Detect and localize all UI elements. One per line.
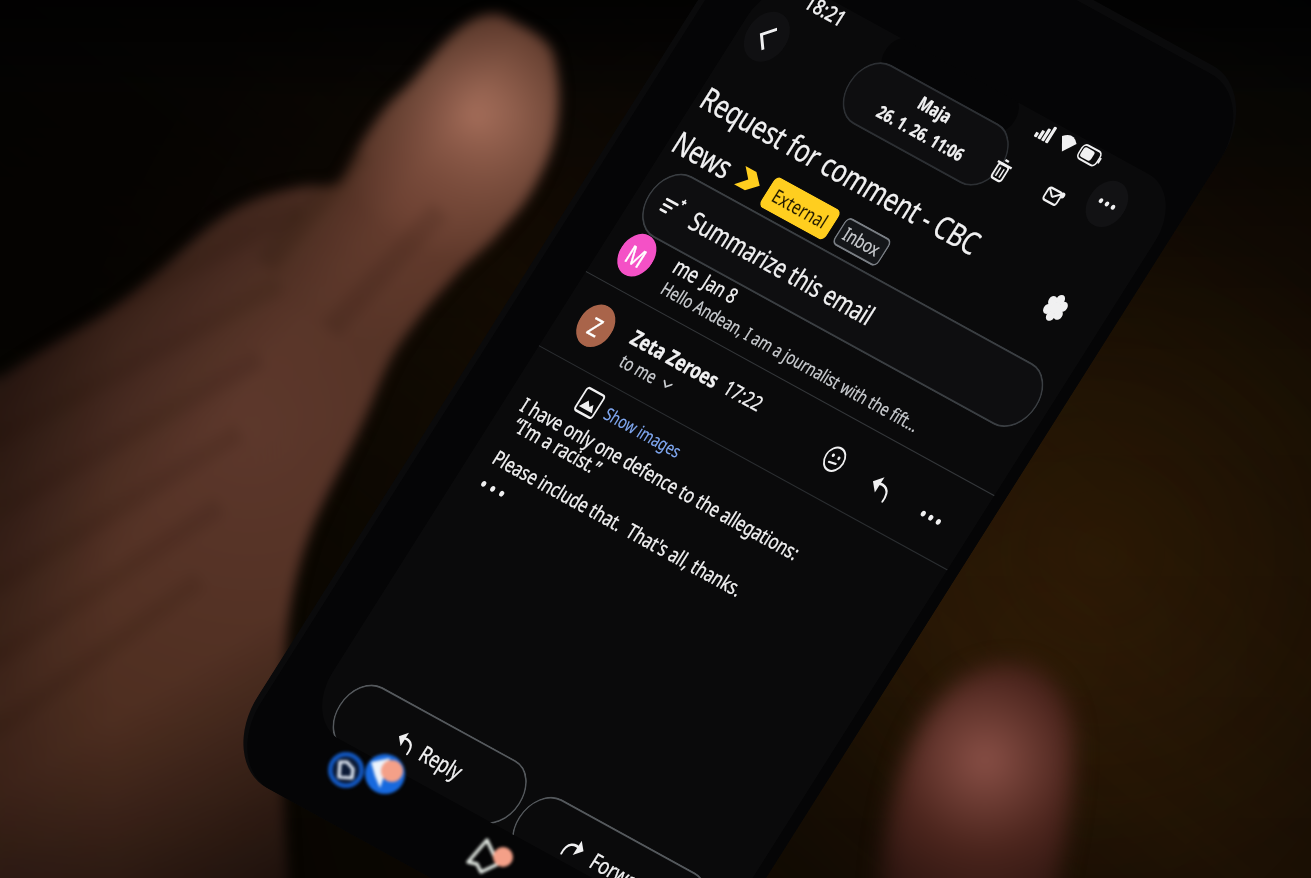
staticText: I have only one defence to the allegatio… [513,357,807,601]
button[interactable]: More options [900,486,961,549]
staticText: Maja [911,86,959,133]
button[interactable]: Reply [851,455,911,519]
staticText: Forward [583,838,662,878]
button[interactable]: Reply [319,651,543,852]
button[interactable]: Forward [506,764,722,878]
staticText: Z [579,307,612,345]
staticText: “I'm a racist.” [506,401,609,493]
staticText: me [666,247,709,292]
staticText: Zeta Zeroes [624,312,728,405]
button[interactable]: Add reaction [804,427,865,491]
button[interactable]: Inbox [829,210,895,273]
staticText: Please include that. That's all, thanks. [485,413,750,634]
button[interactable]: Back [731,0,802,74]
staticText: Hello Andean, I am a journalist with the… [655,244,927,469]
button[interactable]: External [756,167,844,249]
staticText: to me [613,344,664,394]
staticText: Summarize this email [680,180,885,356]
staticText: Request for comment - CBC [689,42,992,298]
staticText: 17:22 [716,369,771,422]
button[interactable]: More options [1074,169,1140,238]
staticText: External [765,176,835,241]
button[interactable]: Delete [969,138,1032,204]
button[interactable]: Show images [598,392,688,473]
staticText: Inbox [836,217,888,267]
staticText: 26. 1. 26. 11:06 [870,89,970,177]
staticText: M [617,234,656,277]
staticText: Jan 8 [695,264,746,314]
staticText: 18:21 [798,0,853,37]
button[interactable]: Summarize with AI [1026,277,1084,338]
staticText: Reply [412,733,472,791]
staticText: News [661,114,745,195]
button[interactable]: Summarize this email [625,115,1060,486]
button[interactable]: Notification from Maja [826,33,1025,215]
button[interactable]: Mark as unread [1022,163,1086,230]
